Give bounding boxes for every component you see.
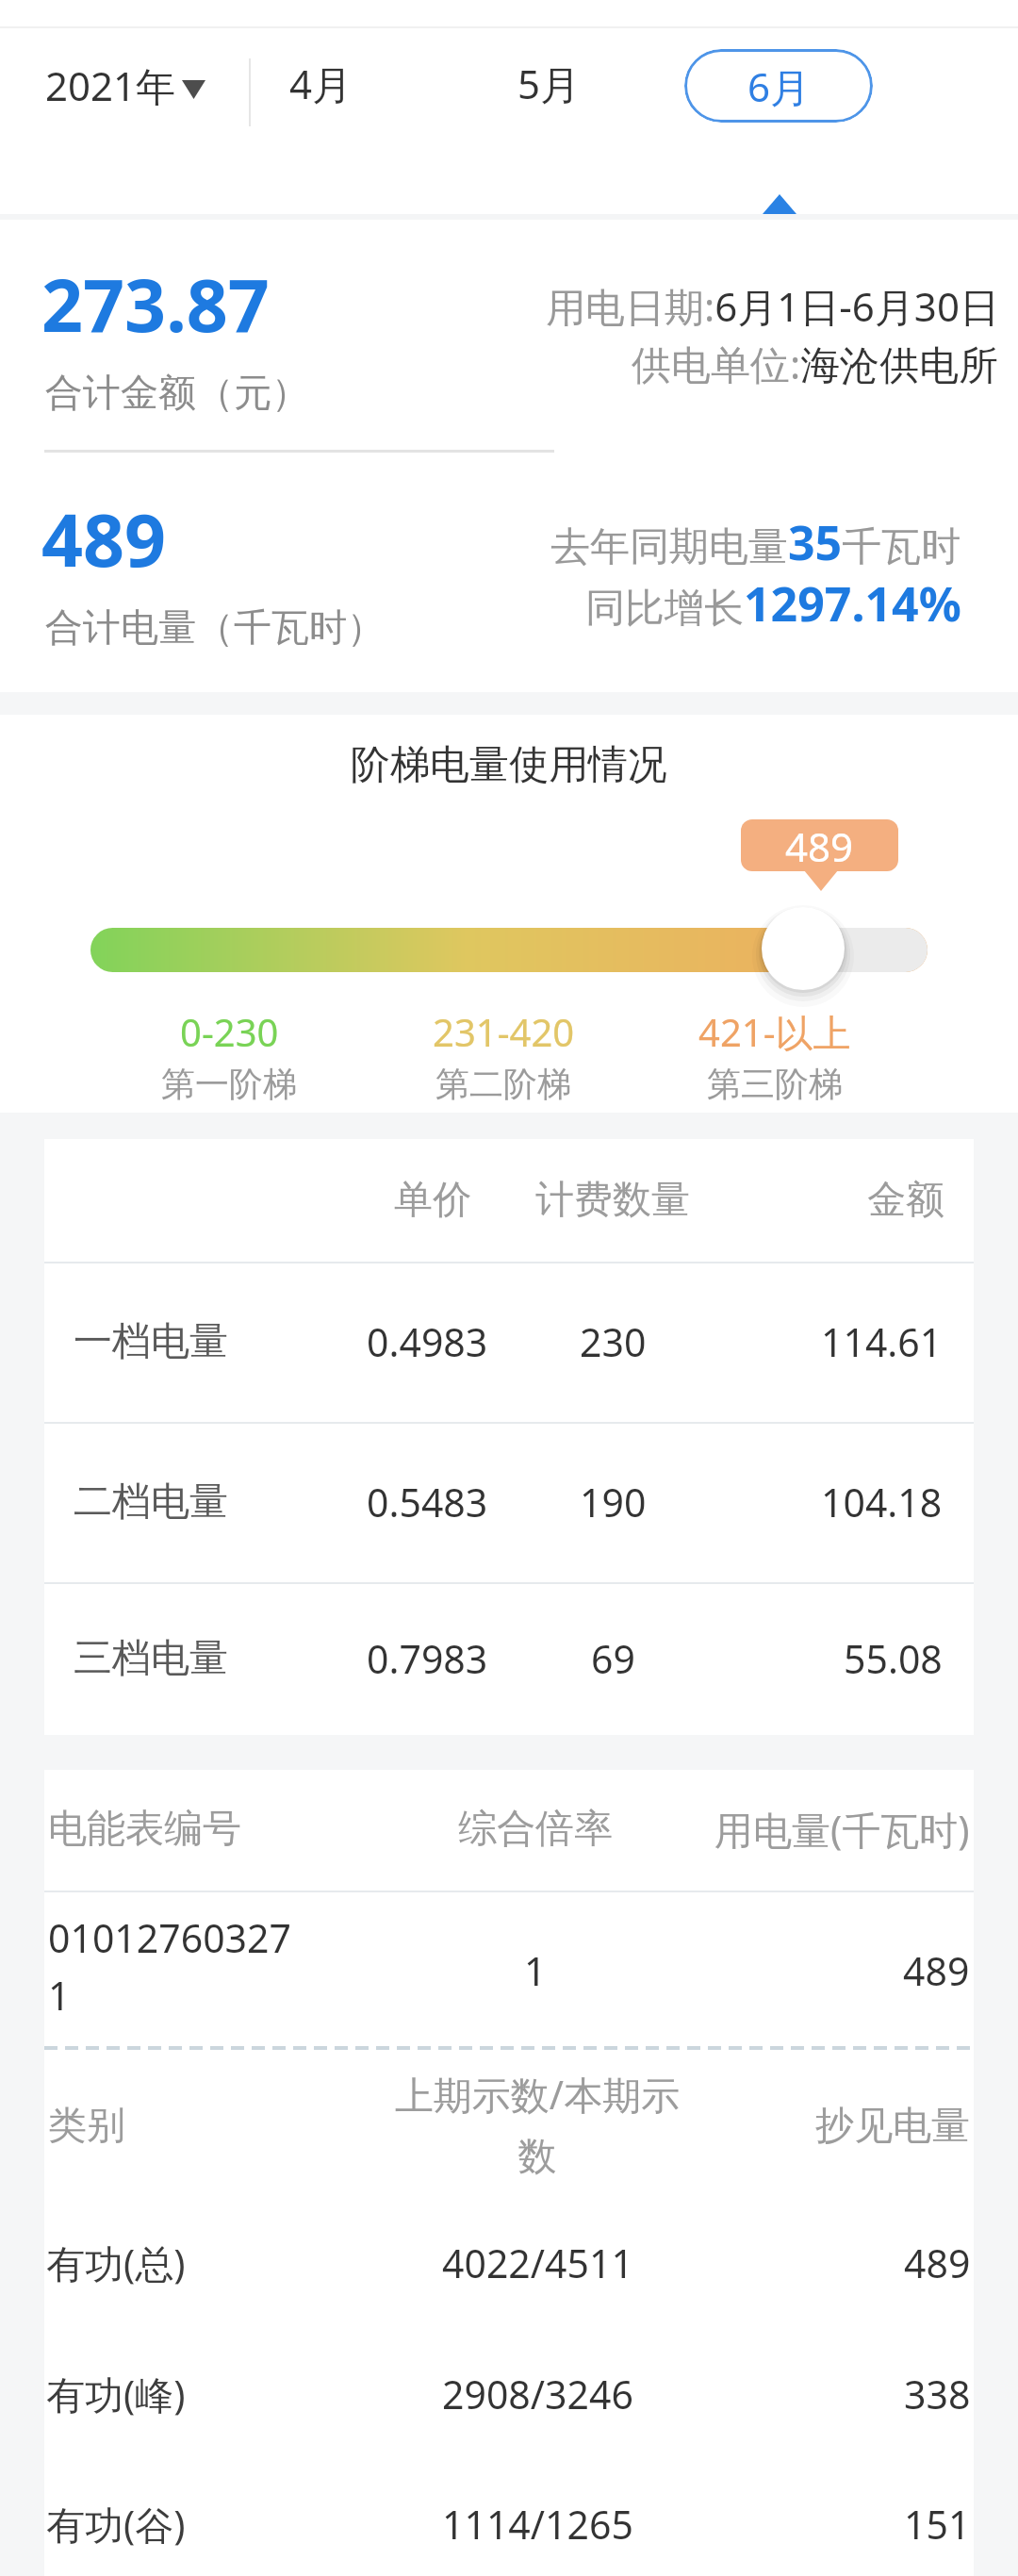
staticText: 第一阶梯: [161, 1063, 297, 1105]
staticText: 有功(总): [46, 2237, 186, 2289]
staticText: 第三阶梯: [707, 1063, 843, 1105]
staticText: 489: [785, 819, 854, 871]
staticText: 2021年: [45, 58, 176, 112]
staticText: 69: [591, 1632, 635, 1685]
staticText: 489: [904, 2237, 971, 2289]
staticText: 有功(峰): [46, 2368, 186, 2420]
staticText: 二档电量: [74, 1478, 228, 1527]
staticText: 有功(谷): [46, 2498, 186, 2551]
staticText: 489: [903, 1944, 970, 1997]
staticText: 010127603271: [48, 1911, 298, 2022]
staticText: 1: [524, 1944, 547, 1997]
staticText: 单价: [394, 1176, 471, 1225]
staticText: 190: [580, 1476, 647, 1528]
staticText: 一档电量: [74, 1317, 228, 1366]
staticText: 去年同期电量35千瓦时: [550, 510, 961, 574]
staticText: 类别: [48, 2102, 125, 2151]
staticText: 第二阶梯: [435, 1063, 571, 1105]
staticText: 同比增长1297.14%: [585, 571, 961, 636]
staticText: 151: [904, 2498, 971, 2551]
staticText: 6月: [747, 59, 811, 113]
staticText: 2908/3246: [442, 2368, 633, 2420]
staticText: 用电日期:6月1日-6月30日: [546, 279, 999, 333]
staticText: 金额: [867, 1176, 944, 1225]
button[interactable]: 6月: [684, 49, 873, 123]
button[interactable]: 5月: [492, 38, 605, 128]
staticText: 104.18: [821, 1476, 943, 1528]
staticText: 上期示数/本期示数: [382, 2068, 693, 2181]
staticText: 0.5483: [367, 1476, 488, 1528]
staticText: 综合倍率: [458, 1805, 613, 1854]
staticText: 230: [580, 1315, 647, 1368]
staticText: 0.4983: [367, 1315, 488, 1368]
staticText: 合计金额（元）: [45, 369, 309, 416]
staticText: 电能表编号: [48, 1805, 241, 1854]
staticText: 231-420: [433, 1006, 575, 1057]
staticText: 合计电量（千瓦时）: [45, 603, 385, 651]
staticText: 计费数量: [535, 1176, 690, 1225]
staticText: 421-以上: [698, 1006, 851, 1058]
staticText: 489: [41, 489, 167, 588]
staticText: 阶梯电量使用情况: [351, 740, 667, 790]
button[interactable]: [38, 38, 217, 128]
staticText: 0-230: [180, 1006, 279, 1057]
button[interactable]: 4月: [264, 38, 377, 128]
staticText: 55.08: [844, 1632, 943, 1685]
staticText: 三档电量: [74, 1634, 228, 1683]
staticText: 273.87: [41, 255, 270, 354]
staticText: 1114/1265: [442, 2498, 633, 2551]
staticText: 338: [904, 2368, 971, 2420]
staticText: 供电单位:海沧供电所: [632, 337, 999, 390]
staticText: 114.61: [821, 1315, 943, 1368]
staticText: 4022/4511: [442, 2237, 633, 2289]
staticText: 抄见电量: [815, 2102, 970, 2151]
staticText: 0.7983: [367, 1632, 488, 1685]
staticText: 4月: [289, 57, 353, 110]
button[interactable]: [747, 892, 860, 1005]
staticText: 用电量(千瓦时): [714, 1803, 970, 1856]
staticText: 5月: [517, 57, 581, 110]
